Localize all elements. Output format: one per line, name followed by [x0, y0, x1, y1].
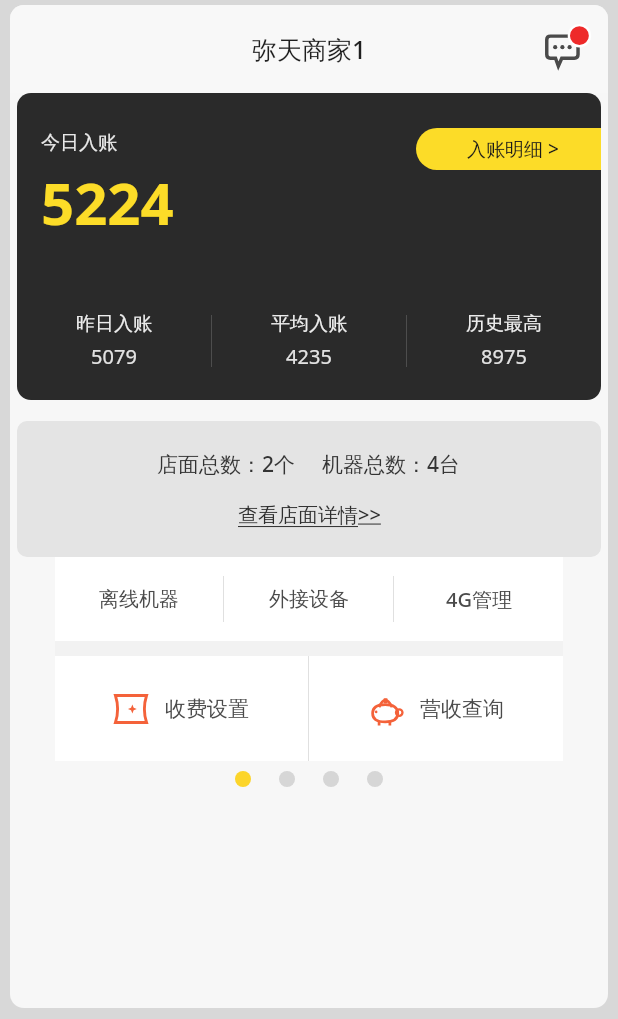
staticText: 入账明细 > [467, 136, 559, 162]
staticText: 4235 [286, 343, 332, 370]
button[interactable]: Messages, 23 unread [544, 26, 590, 72]
button[interactable]: 入账明细 > [416, 128, 601, 170]
staticText: 收费设置 [165, 696, 249, 722]
staticText: 营收查询 [420, 696, 504, 722]
staticText: 8975 [481, 343, 527, 370]
staticText: 今日入账 [41, 131, 117, 155]
staticText: 离线机器 [99, 587, 179, 612]
button[interactable]: 4G管理 [394, 557, 563, 641]
button[interactable]: 平均入账 [212, 298, 406, 384]
staticText: 4G管理 [446, 586, 512, 613]
staticText: 机器总数：4台 [322, 450, 461, 479]
staticText: 5079 [91, 343, 137, 370]
button[interactable]: 收费设置 [55, 656, 308, 761]
button[interactable]: 昨日入账 [17, 298, 211, 384]
staticText: 店面总数：2个 [157, 450, 296, 479]
button[interactable]: 查看店面详情>> [238, 501, 381, 528]
staticText: 弥天商家1 [252, 32, 367, 66]
staticText: 外接设备 [269, 587, 349, 612]
button[interactable]: 营收查询 [309, 656, 563, 761]
button[interactable]: 外接设备 [224, 557, 393, 641]
button[interactable]: 离线机器 [55, 557, 223, 641]
staticText: 平均入账 [271, 312, 347, 336]
staticText: 5224 [41, 163, 174, 242]
staticText: 历史最高 [466, 312, 542, 336]
staticText: 查看店面详情>> [238, 501, 381, 528]
button[interactable]: 历史最高 [407, 298, 601, 384]
staticText: 昨日入账 [76, 312, 152, 336]
